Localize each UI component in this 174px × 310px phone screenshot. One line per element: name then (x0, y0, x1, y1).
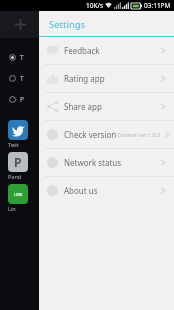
staticText: T (20, 53, 24, 62)
staticText: Pand (8, 173, 22, 180)
button[interactable]: P (8, 150, 39, 182)
staticText: Share app (64, 101, 102, 112)
button[interactable]: T (9, 47, 39, 68)
staticText: Check version (64, 129, 117, 140)
button[interactable]: P (9, 89, 39, 110)
button[interactable]: Add (0, 11, 39, 38)
staticText: 10K/s (86, 1, 103, 10)
button[interactable]: Twit (8, 118, 39, 150)
button[interactable]: Network status (39, 149, 174, 176)
button[interactable]: Feedback (39, 37, 174, 64)
staticText: P (14, 154, 22, 170)
staticText: P (20, 95, 24, 104)
staticText: 03:11PM (144, 1, 171, 10)
button[interactable]: Rating app (39, 65, 174, 92)
staticText: T (20, 74, 24, 83)
button[interactable]: T (9, 68, 39, 89)
staticText: Rating app (64, 73, 105, 84)
staticText: Settings (49, 18, 86, 31)
staticText: About us (64, 185, 98, 196)
button[interactable]: Check version (39, 121, 174, 148)
staticText: LINE (14, 192, 23, 197)
staticText: Network status (64, 157, 122, 168)
button[interactable]: LINE (8, 182, 39, 214)
staticText: Feedback (64, 45, 100, 56)
staticText: Twit (8, 141, 19, 148)
button[interactable]: About us (39, 177, 174, 204)
staticText: Current ver:1.0.0 (117, 131, 161, 138)
button[interactable]: Share app (39, 93, 174, 120)
staticText: Lin (8, 205, 16, 212)
